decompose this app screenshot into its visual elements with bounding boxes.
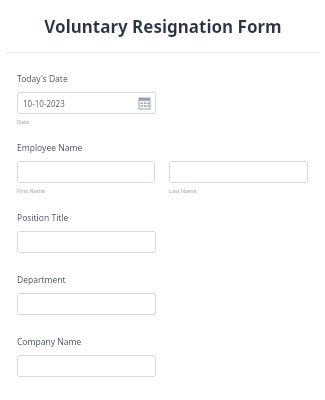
staticText: Voluntary Resignation Form bbox=[44, 15, 282, 38]
button[interactable] bbox=[169, 161, 308, 183]
staticText: Company Name bbox=[17, 336, 82, 348]
staticText: Department bbox=[17, 274, 66, 286]
button[interactable]: Pick date bbox=[139, 98, 150, 109]
button[interactable] bbox=[17, 231, 156, 253]
button[interactable]: 10-10-2023 bbox=[17, 92, 156, 114]
staticText: 10-10-2023 bbox=[23, 98, 65, 109]
staticText: Position Title bbox=[17, 212, 69, 224]
staticText: Today's Date bbox=[17, 73, 68, 85]
staticText: Date bbox=[17, 118, 30, 125]
staticText: Employee Name bbox=[17, 142, 83, 154]
button[interactable] bbox=[17, 355, 156, 377]
staticText: Last Name bbox=[169, 187, 197, 194]
button[interactable] bbox=[17, 161, 155, 183]
button[interactable] bbox=[17, 293, 156, 315]
staticText: First Name bbox=[17, 187, 46, 194]
